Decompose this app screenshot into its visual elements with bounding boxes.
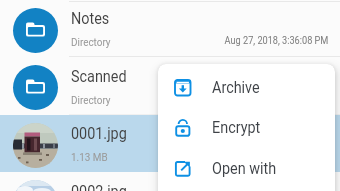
staticText: Archive	[212, 78, 260, 97]
staticText: Directory	[71, 94, 111, 107]
staticText: Encrypt	[212, 118, 261, 137]
staticText: 1.13 MB	[71, 151, 108, 164]
button[interactable]: Open with	[158, 148, 335, 189]
staticText: Aug 27, 2018, 3:36:08 PM	[225, 35, 329, 47]
staticText: 0002.jpg	[71, 182, 127, 191]
button[interactable]	[0, 0, 340, 58]
button[interactable]: Archive	[158, 67, 335, 108]
staticText: Notes	[71, 9, 110, 28]
staticText: Scanned	[71, 67, 127, 86]
staticText: Open with	[212, 159, 277, 178]
button[interactable]: Encrypt	[158, 107, 335, 148]
button[interactable]	[0, 115, 340, 173]
button[interactable]	[0, 173, 340, 191]
staticText: Directory	[71, 36, 111, 49]
staticText: 0001.jpg	[71, 124, 127, 143]
button[interactable]	[0, 58, 340, 116]
